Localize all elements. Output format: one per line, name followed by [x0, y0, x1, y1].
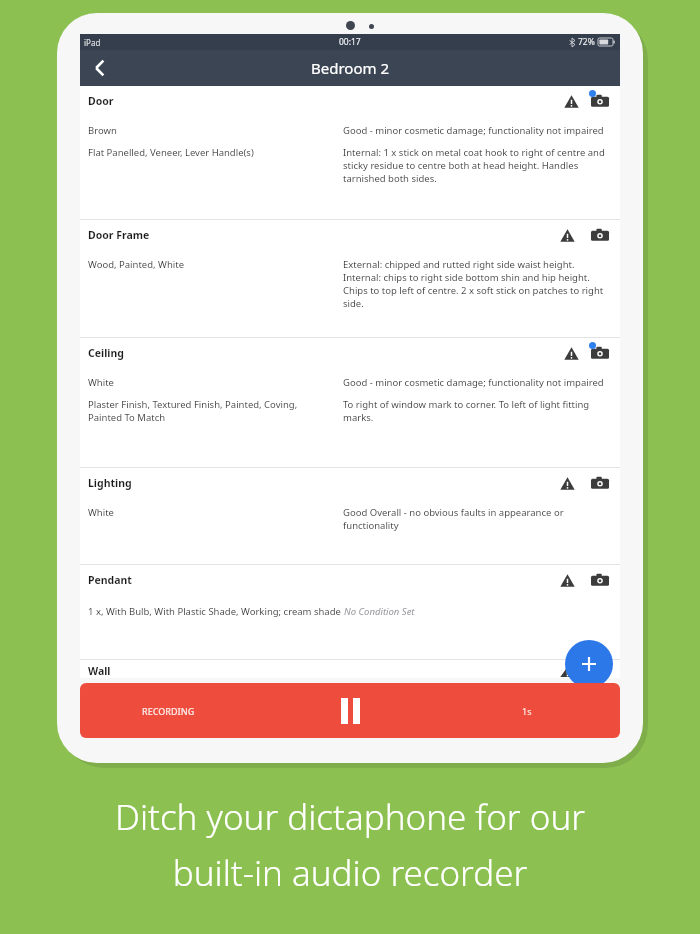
- button[interactable]: Pendant: [80, 565, 620, 595]
- staticText: Pendant: [88, 573, 132, 587]
- button[interactable]: Issue: [562, 344, 580, 362]
- staticText: White: [88, 376, 114, 389]
- button[interactable]: Issue: [558, 571, 576, 589]
- staticText: Good - minor cosmetic damage; functional…: [343, 124, 604, 137]
- staticText: built-in audio recorder: [0, 849, 700, 897]
- button[interactable]: Camera: [590, 473, 610, 493]
- button[interactable]: Back: [80, 50, 120, 86]
- button[interactable]: Camera: [590, 570, 610, 590]
- staticText: No Condition Set: [344, 605, 415, 618]
- button[interactable]: Door: [80, 86, 620, 116]
- staticText: 1 x, With Bulb, With Plastic Shade, Work…: [88, 605, 344, 618]
- staticText: 1s: [522, 705, 532, 717]
- staticText: 00:17: [339, 36, 361, 48]
- staticText: 72%: [578, 36, 595, 48]
- button[interactable]: Camera: [590, 225, 610, 245]
- button[interactable]: Lighting: [80, 468, 620, 498]
- staticText: To right of window mark to corner. To le…: [343, 398, 608, 424]
- staticText: Internal: 1 x stick on metal coat hook t…: [343, 146, 608, 185]
- button[interactable]: Issue: [558, 226, 576, 244]
- button[interactable]: Issue: [558, 474, 576, 492]
- button[interactable]: Door Frame: [80, 220, 620, 250]
- staticText: Bedroom 2: [311, 58, 389, 78]
- staticText: Flat Panelled, Veneer, Lever Handle(s): [88, 146, 254, 159]
- button[interactable]: Add: [565, 640, 613, 688]
- button[interactable]: Wall: [80, 660, 620, 678]
- staticText: Door: [88, 94, 114, 108]
- button[interactable]: Issue: [558, 666, 576, 678]
- staticText: Good - minor cosmetic damage; functional…: [343, 376, 604, 389]
- button[interactable]: Camera: [590, 666, 610, 678]
- staticText: Door Frame: [88, 228, 150, 242]
- staticText: Good Overall - no obvious faults in appe…: [343, 506, 608, 532]
- button[interactable]: Camera: [590, 343, 610, 363]
- button[interactable]: Camera: [590, 91, 610, 111]
- staticText: RECORDING: [142, 705, 195, 717]
- button[interactable]: RECORDING: [80, 683, 620, 738]
- staticText: Ditch your dictaphone for our: [0, 793, 700, 841]
- staticText: White: [88, 506, 114, 519]
- staticText: Plaster Finish, Textured Finish, Painted…: [88, 398, 333, 424]
- staticText: Wood, Painted, White: [88, 258, 184, 271]
- staticText: Brown: [88, 124, 117, 137]
- staticText: iPad: [84, 37, 101, 48]
- staticText: Ceiling: [88, 346, 124, 360]
- staticText: External: chipped and rutted right side …: [343, 258, 608, 310]
- staticText: Lighting: [88, 476, 132, 490]
- button[interactable]: Issue: [562, 92, 580, 110]
- staticText: Wall: [88, 664, 111, 678]
- button[interactable]: Ceiling: [80, 338, 620, 368]
